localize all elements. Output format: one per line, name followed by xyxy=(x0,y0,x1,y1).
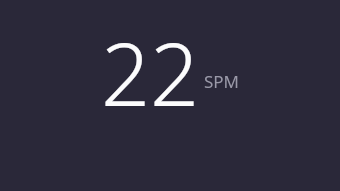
staticText: SPM xyxy=(204,70,240,93)
button[interactable]: 22 xyxy=(0,14,340,131)
staticText: 22 xyxy=(101,14,200,131)
